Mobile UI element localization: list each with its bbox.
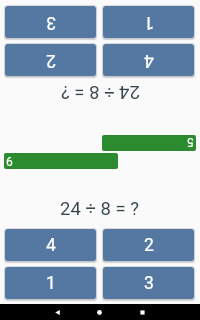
- button[interactable]: Back: [45, 304, 70, 320]
- staticText: 6: [6, 155, 13, 169]
- staticText: 4: [46, 235, 56, 256]
- staticText: 3: [144, 273, 154, 294]
- button[interactable]: 1: [103, 6, 194, 38]
- staticText: 1: [144, 12, 154, 33]
- button[interactable]: 3: [5, 6, 96, 38]
- button[interactable]: 4: [5, 229, 96, 261]
- staticText: 24 ÷ 8 = ?: [60, 81, 140, 103]
- button[interactable]: Recent apps: [130, 304, 155, 320]
- staticText: 4: [144, 50, 154, 71]
- button[interactable]: 3: [103, 267, 194, 299]
- staticText: 2: [46, 50, 56, 71]
- button[interactable]: Home: [87, 304, 112, 320]
- staticText: 2: [144, 235, 154, 256]
- button[interactable]: 1: [5, 267, 96, 299]
- button[interactable]: 2: [5, 44, 96, 76]
- button[interactable]: 2: [103, 229, 194, 261]
- button[interactable]: 4: [103, 44, 194, 76]
- staticText: 24 ÷ 8 = ?: [60, 198, 140, 220]
- staticText: 5: [187, 135, 194, 149]
- staticText: 1: [46, 273, 56, 294]
- staticText: 3: [46, 12, 56, 33]
